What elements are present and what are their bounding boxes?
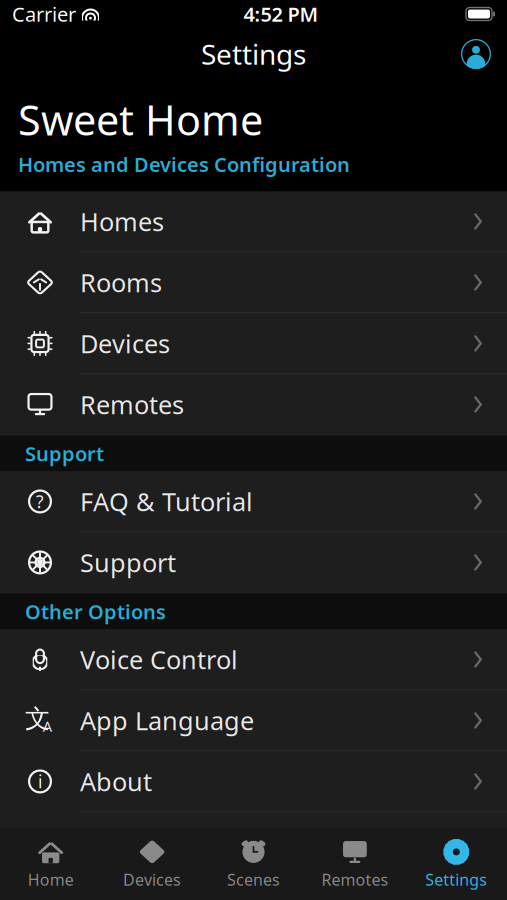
button[interactable]: Voice Control: [0, 629, 507, 690]
button[interactable]: Homes: [0, 191, 507, 252]
staticText: Rooms: [80, 266, 162, 299]
staticText: Remotes: [321, 869, 388, 890]
staticText: 4:52 PM: [243, 1, 318, 27]
button[interactable]: 文: [0, 690, 507, 751]
staticText: App Language: [80, 704, 254, 737]
staticText: ?: [36, 490, 44, 513]
button[interactable]: Logout: [0, 812, 507, 873]
button[interactable]: Support: [0, 532, 507, 593]
button[interactable]: Devices: [0, 313, 507, 374]
staticText: Settings: [201, 35, 306, 73]
staticText: Homes and Devices Configuration: [18, 151, 350, 177]
staticText: Logout: [80, 826, 164, 859]
staticText: i: [38, 770, 42, 793]
staticText: About: [80, 765, 152, 798]
button[interactable]: Remotes: [304, 828, 406, 900]
button[interactable]: Remotes: [0, 374, 507, 435]
button[interactable]: Settings: [406, 828, 507, 900]
button[interactable]: Home: [0, 828, 101, 900]
button[interactable]: Account: [454, 32, 498, 76]
button[interactable]: i: [0, 751, 507, 812]
staticText: Devices: [80, 327, 170, 360]
staticText: FAQ & Tutorial: [80, 485, 253, 518]
staticText: Carrier: [12, 1, 76, 27]
staticText: Other Options: [25, 598, 166, 625]
staticText: Support: [80, 546, 176, 579]
staticText: Voice Control: [80, 643, 238, 676]
staticText: Remotes: [80, 388, 184, 421]
staticText: Settings: [425, 869, 487, 890]
button[interactable]: ?: [0, 471, 507, 532]
staticText: Support: [25, 440, 104, 467]
staticText: Scenes: [227, 869, 280, 890]
staticText: A: [43, 716, 52, 736]
button[interactable]: Devices: [101, 828, 203, 900]
staticText: Homes: [80, 205, 164, 238]
staticText: Home: [28, 869, 74, 890]
staticText: Sweet Home: [18, 92, 263, 147]
staticText: 文: [25, 703, 50, 734]
button[interactable]: Scenes: [203, 828, 304, 900]
button[interactable]: Rooms: [0, 252, 507, 313]
staticText: Devices: [123, 869, 181, 890]
